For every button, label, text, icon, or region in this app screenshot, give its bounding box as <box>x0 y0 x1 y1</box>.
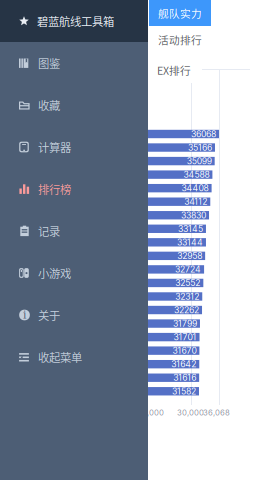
staticText: 35099 <box>187 156 212 166</box>
staticText: 36068 <box>191 129 216 139</box>
button[interactable]: EX排行 <box>148 57 202 83</box>
button[interactable]: 排行榜 <box>0 168 148 210</box>
staticText: 记录 <box>38 223 60 239</box>
button[interactable]: 图鉴 <box>0 42 148 84</box>
staticText: 收藏 <box>38 97 60 113</box>
staticText: 图鉴 <box>38 55 60 71</box>
button[interactable]: 活动排行 <box>149 26 211 53</box>
staticText: 33145 <box>178 223 203 234</box>
staticText: 34588 <box>183 169 209 180</box>
staticText: 排行榜 <box>38 181 71 197</box>
button[interactable]: 收起菜单 <box>0 336 148 378</box>
staticText: 32724 <box>175 264 201 275</box>
button[interactable]: 小游戏 <box>0 252 148 294</box>
staticText: 32262 <box>174 305 199 315</box>
staticText: i <box>23 308 26 321</box>
button[interactable]: 计算器 <box>0 126 148 168</box>
staticText: 20,000 <box>137 408 164 417</box>
staticText: 33144 <box>177 237 203 248</box>
staticText: 小游戏 <box>38 265 71 281</box>
staticText: EX排行 <box>157 62 191 78</box>
staticText: 计算器 <box>38 139 71 155</box>
staticText: 34112 <box>184 196 207 207</box>
staticText: 32312 <box>175 291 199 302</box>
staticText: 34408 <box>182 183 209 193</box>
button[interactable]: i <box>0 294 148 336</box>
staticText: 舰队实力 <box>158 5 202 21</box>
staticText: 活动排行 <box>158 32 202 47</box>
staticText: 30,000 <box>177 408 204 417</box>
staticText: 收起菜单 <box>38 349 82 365</box>
staticText: 碧蓝航线工具箱 <box>37 13 114 29</box>
button[interactable]: 收藏 <box>0 84 148 126</box>
staticText: 35166 <box>188 142 212 153</box>
button[interactable]: 舰队实力 <box>149 0 211 26</box>
staticText: 31582 <box>172 386 196 396</box>
button[interactable]: 碧蓝航线工具箱 <box>0 0 148 42</box>
button[interactable]: 记录 <box>0 210 148 252</box>
staticText: 31799 <box>173 318 197 329</box>
staticText: 36,068 <box>203 408 230 417</box>
staticText: 32958 <box>177 251 202 261</box>
staticText: 31701 <box>173 332 196 342</box>
staticText: 关于 <box>38 307 60 323</box>
staticText: 31642 <box>171 359 196 369</box>
staticText: 31670 <box>172 345 196 356</box>
staticText: 32552 <box>175 278 200 288</box>
staticText: 31616 <box>173 372 196 383</box>
staticText: 33830 <box>181 210 206 220</box>
